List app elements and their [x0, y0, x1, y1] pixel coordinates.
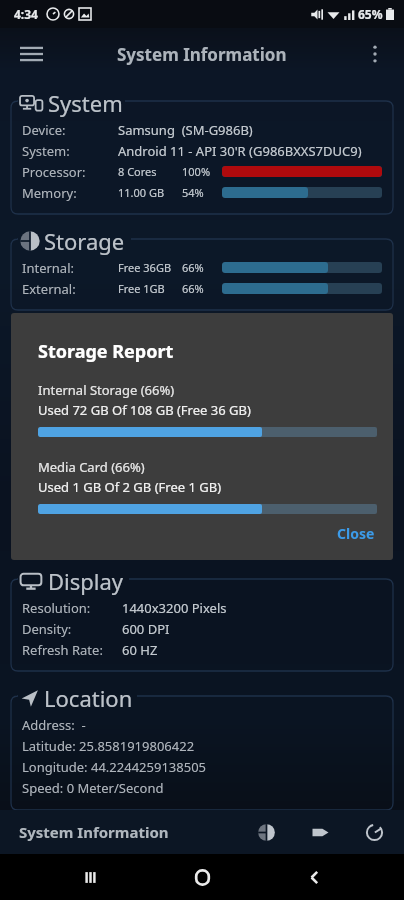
staticText: Free 36GB: [118, 260, 182, 275]
staticText: 66%: [182, 281, 222, 296]
staticText: Internal:: [22, 259, 118, 277]
button[interactable]: Storage report: [250, 816, 282, 848]
button[interactable]: More options: [354, 33, 396, 75]
staticText: 60 HZ: [122, 641, 158, 659]
staticText: Display: [48, 566, 124, 596]
button[interactable]: Storage Report: [11, 313, 393, 560]
button[interactable]: Close: [329, 519, 383, 548]
button[interactable]: Display: [11, 566, 393, 671]
staticText: 100%: [182, 164, 222, 179]
staticText: 8 Cores: [118, 164, 182, 179]
staticText: External:: [22, 280, 118, 298]
staticText: Used 1 GB Of 2 GB (Free 1 GB): [38, 478, 222, 496]
staticText: Internal Storage (66%): [38, 381, 175, 399]
staticText: Android 11 - API 30'R (G986BXXS7DUC9): [118, 142, 362, 160]
staticText: Refresh Rate:: [22, 641, 122, 659]
staticText: Close: [337, 524, 375, 543]
staticText: 4:34: [14, 6, 38, 22]
staticText: 1440x3200 Pixels: [122, 599, 227, 617]
staticText: Location: [44, 683, 133, 713]
button[interactable]: Location: [11, 683, 393, 810]
button[interactable]: Back: [292, 855, 336, 899]
staticText: 11.00 GB: [118, 185, 182, 200]
staticText: 66%: [182, 260, 222, 275]
staticText: System Information: [117, 43, 287, 66]
staticText: System:: [22, 142, 118, 160]
staticText: 54%: [182, 185, 222, 200]
staticText: Address: -: [22, 716, 142, 734]
button[interactable]: System: [11, 88, 393, 214]
staticText: System: [48, 88, 123, 118]
staticText: 65%: [358, 6, 383, 22]
staticText: Samsung (SM-G986B): [118, 121, 253, 139]
staticText: Processor:: [22, 163, 118, 181]
staticText: Speed: 0 Meter/Second: [22, 779, 222, 797]
button[interactable]: Labels: [304, 816, 336, 848]
staticText: Longitude: 44.2244259138505: [22, 758, 262, 776]
staticText: Resolution:: [22, 599, 122, 617]
button[interactable]: Open navigation menu: [8, 31, 54, 77]
button[interactable]: Home: [180, 855, 224, 899]
staticText: Used 72 GB Of 108 GB (Free 36 GB): [38, 401, 251, 419]
button[interactable]: Storage: [11, 226, 393, 310]
button[interactable]: Refresh: [358, 816, 390, 848]
staticText: Storage: [44, 226, 125, 256]
staticText: Media Card (66%): [38, 458, 145, 476]
staticText: Density:: [22, 620, 122, 638]
staticText: Storage Report: [38, 339, 174, 364]
staticText: System Information: [19, 822, 169, 842]
staticText: Memory:: [22, 184, 118, 202]
button[interactable]: Recents: [68, 855, 112, 899]
staticText: Device:: [22, 121, 118, 139]
staticText: 600 DPI: [122, 620, 170, 638]
staticText: Latitude: 25.8581919806422: [22, 737, 242, 755]
staticText: Free 1GB: [118, 281, 182, 296]
